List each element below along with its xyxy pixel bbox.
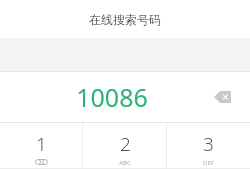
button[interactable]: Backspace: [206, 81, 238, 113]
staticText: 在线搜索号码: [89, 12, 161, 27]
button[interactable]: 3: [167, 123, 250, 169]
staticText: DEF: [203, 159, 214, 167]
button[interactable]: 1: [0, 123, 82, 169]
staticText: 1: [36, 131, 47, 157]
staticText: 10086: [76, 80, 148, 114]
button[interactable]: 2: [83, 123, 166, 169]
staticText: ABC: [119, 159, 131, 167]
staticText: 2: [120, 131, 131, 157]
staticText: 3: [203, 131, 214, 157]
